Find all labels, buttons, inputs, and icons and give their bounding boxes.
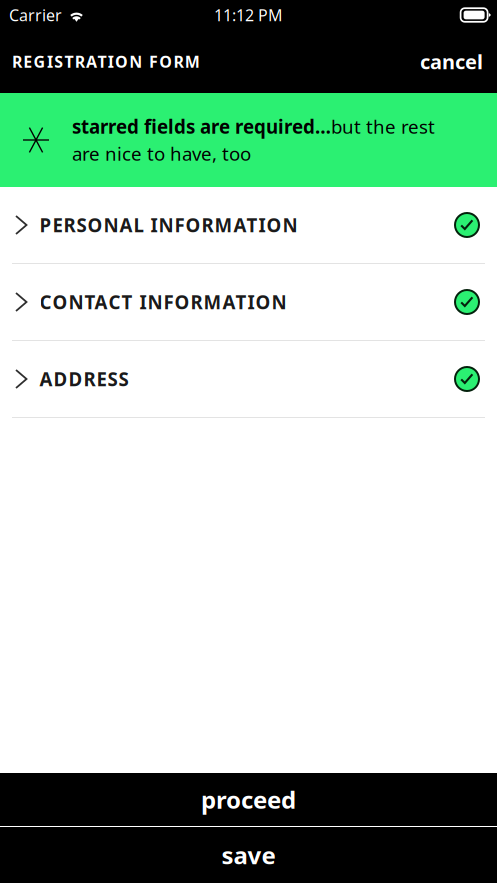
staticText: PERSONAL INFORMATION — [39, 213, 297, 237]
button[interactable]: ADDRESS — [0, 341, 497, 418]
staticText: CONTACT INFORMATION — [39, 290, 286, 314]
staticText: are nice to have, too — [72, 141, 251, 166]
staticText: REGISTRATION FORM — [12, 51, 200, 72]
button[interactable]: CONTACT INFORMATION — [0, 264, 497, 341]
staticText: 11:12 PM — [214, 4, 283, 26]
button[interactable]: PERSONAL INFORMATION — [0, 187, 497, 264]
staticText: save — [221, 839, 275, 871]
staticText: ADDRESS — [39, 367, 128, 391]
button[interactable]: cancel — [406, 30, 497, 93]
staticText: Carrier — [9, 4, 62, 26]
button[interactable]: save — [0, 827, 497, 883]
staticText: starred fields are required…but the rest — [72, 114, 435, 139]
staticText: proceed — [201, 784, 296, 815]
button[interactable]: proceed — [0, 773, 497, 826]
staticText: cancel — [420, 48, 483, 75]
